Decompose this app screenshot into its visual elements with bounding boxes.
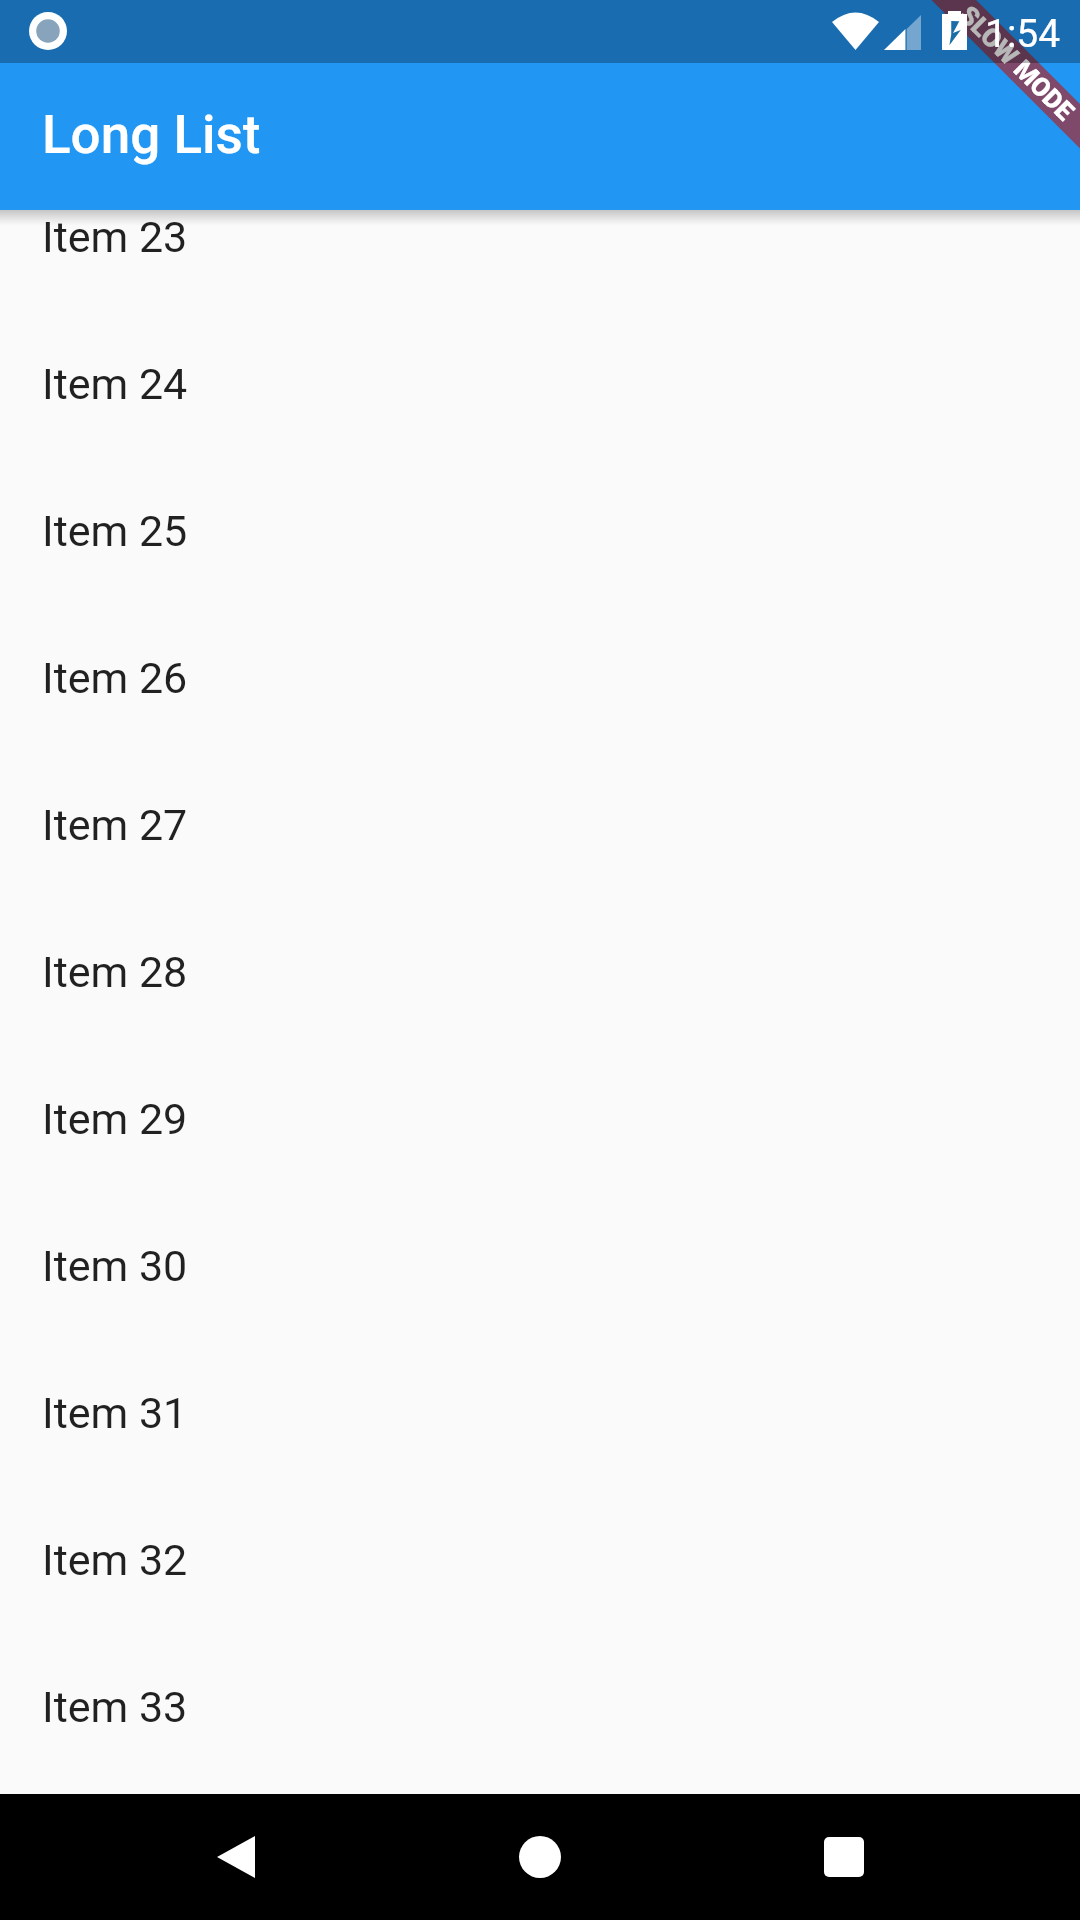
button[interactable]: Item 24 xyxy=(0,310,1080,457)
staticText: Item 25 xyxy=(42,506,188,556)
staticText: Item 26 xyxy=(42,653,188,703)
button[interactable]: Back xyxy=(180,1801,292,1913)
button[interactable]: Recent apps xyxy=(788,1801,900,1913)
staticText: Item 32 xyxy=(42,1535,188,1585)
staticText: Item 31 xyxy=(42,1388,188,1438)
staticText: Item 28 xyxy=(42,947,188,997)
staticText: Item 33 xyxy=(42,1682,188,1732)
button[interactable]: Item 30 xyxy=(0,1192,1080,1339)
staticText: Item 24 xyxy=(42,359,188,409)
button[interactable]: Item 26 xyxy=(0,604,1080,751)
staticText: Long List xyxy=(42,104,261,166)
button[interactable]: Item 25 xyxy=(0,457,1080,604)
staticText: Item 23 xyxy=(42,212,188,262)
button[interactable]: Item 23 xyxy=(0,210,1080,310)
staticText: Item 29 xyxy=(42,1094,188,1144)
button[interactable]: Item 31 xyxy=(0,1339,1080,1486)
button[interactable]: Item 32 xyxy=(0,1486,1080,1633)
button[interactable]: Item 33 xyxy=(0,1633,1080,1780)
button[interactable]: Item 27 xyxy=(0,751,1080,898)
button[interactable]: Item 29 xyxy=(0,1045,1080,1192)
button[interactable]: Home xyxy=(484,1801,596,1913)
button[interactable]: Item 28 xyxy=(0,898,1080,1045)
staticText: 1:54 xyxy=(985,11,1061,57)
staticText: Item 30 xyxy=(42,1241,188,1291)
staticText: Item 27 xyxy=(42,800,188,850)
